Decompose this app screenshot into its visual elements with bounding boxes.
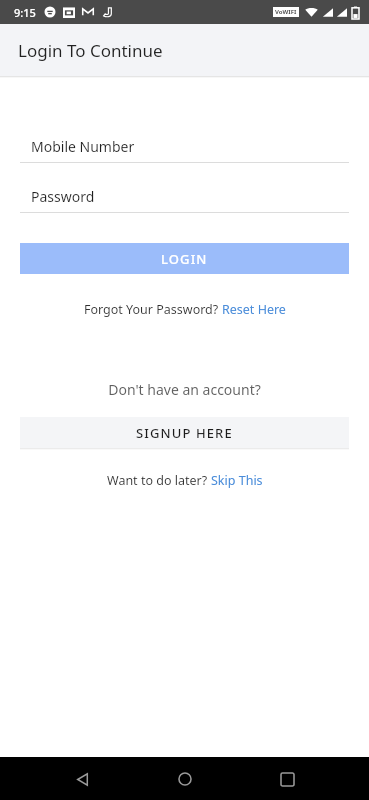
button[interactable]: Reset Here <box>222 301 286 318</box>
staticText: Mobile Number <box>31 137 135 156</box>
staticText: Password <box>31 187 95 206</box>
staticText: Login To Continue <box>18 39 163 62</box>
staticText: VoWIFI <box>275 8 297 16</box>
button[interactable]: Recent apps <box>267 759 307 799</box>
staticText: SIGNUP HERE <box>136 424 233 442</box>
button[interactable]: Home <box>165 759 205 799</box>
staticText: Want to do later? <box>107 472 211 489</box>
button[interactable]: Skip This <box>211 472 263 489</box>
staticText: Forgot Your Password? <box>84 301 222 318</box>
button[interactable]: SIGNUP HERE <box>20 417 349 448</box>
staticText: 9:15 <box>14 5 36 20</box>
staticText: Skip This <box>211 472 263 489</box>
button[interactable]: Mobile Number <box>20 131 349 163</box>
button[interactable]: LOGIN <box>20 243 349 274</box>
staticText: LOGIN <box>161 250 208 268</box>
staticText: Don't have an account? <box>0 380 369 399</box>
button[interactable]: Back <box>62 759 102 799</box>
staticText: Reset Here <box>222 301 286 318</box>
button[interactable]: Password <box>20 181 349 213</box>
